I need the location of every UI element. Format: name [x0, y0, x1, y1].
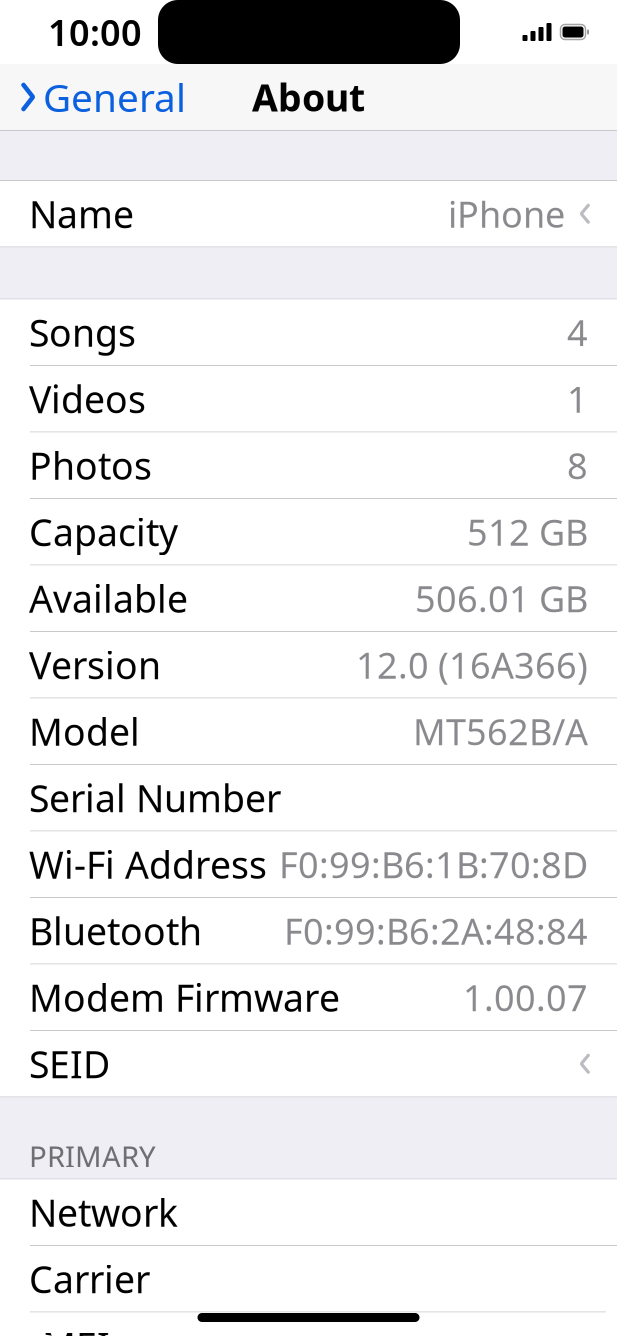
staticText: Carrier — [29, 1254, 150, 1304]
staticText: F0:99:B6:1B:70:8D — [279, 840, 588, 888]
staticText: Available — [29, 573, 188, 623]
staticText: Model — [29, 706, 140, 756]
button[interactable]: General — [0, 64, 198, 130]
staticText: iPhone — [448, 190, 565, 238]
staticText: Wi-Fi Address — [29, 839, 267, 889]
staticText: 1.00.07 — [463, 973, 588, 1021]
staticText: Name — [29, 189, 134, 239]
staticText: 8 — [567, 441, 588, 489]
staticText: F0:99:B6:2A:48:84 — [284, 907, 588, 955]
staticText: Photos — [29, 440, 152, 490]
staticText: About — [252, 72, 365, 122]
staticText: 4 — [567, 308, 588, 356]
staticText: SEID — [29, 1039, 110, 1089]
staticText: Bluetooth — [29, 906, 202, 956]
button[interactable]: Name — [0, 181, 617, 246]
staticText: 12.0 (16A366) — [356, 641, 588, 689]
staticText: MT562B/A — [413, 707, 588, 755]
staticText: IMEI — [29, 1320, 110, 1336]
staticText: 10:00 — [48, 8, 142, 56]
staticText: General — [43, 71, 186, 123]
staticText: Network — [29, 1187, 178, 1237]
staticText: Songs — [29, 307, 136, 357]
staticText: Modem Firmware — [29, 972, 340, 1022]
staticText: Videos — [29, 374, 146, 424]
staticText: Serial Number — [29, 773, 281, 823]
staticText: 506.01 GB — [415, 574, 588, 622]
staticText: PRIMARY — [29, 1136, 156, 1175]
staticText: Version — [29, 640, 161, 690]
staticText: 1 — [567, 375, 588, 423]
staticText: 512 GB — [467, 508, 588, 556]
staticText: Capacity — [29, 507, 178, 557]
button[interactable]: SEID — [0, 1031, 617, 1096]
